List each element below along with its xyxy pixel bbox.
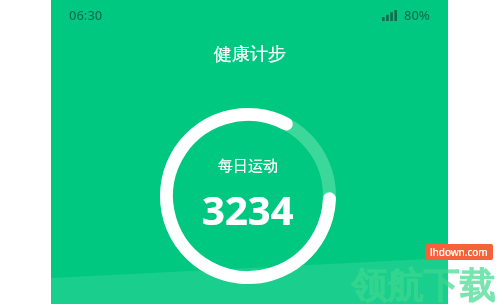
staticText: lhdown.com <box>430 245 488 259</box>
staticText: 3234 <box>202 182 294 236</box>
staticText: 每日运动 <box>218 157 278 176</box>
button[interactable]: 每日运动 <box>160 108 336 284</box>
staticText: 06:30 <box>69 6 103 24</box>
staticText: 领航下载 <box>351 263 495 304</box>
staticText: 80% <box>404 6 430 24</box>
staticText: 健康计步 <box>214 43 286 66</box>
other: Signal strength <box>382 10 397 21</box>
